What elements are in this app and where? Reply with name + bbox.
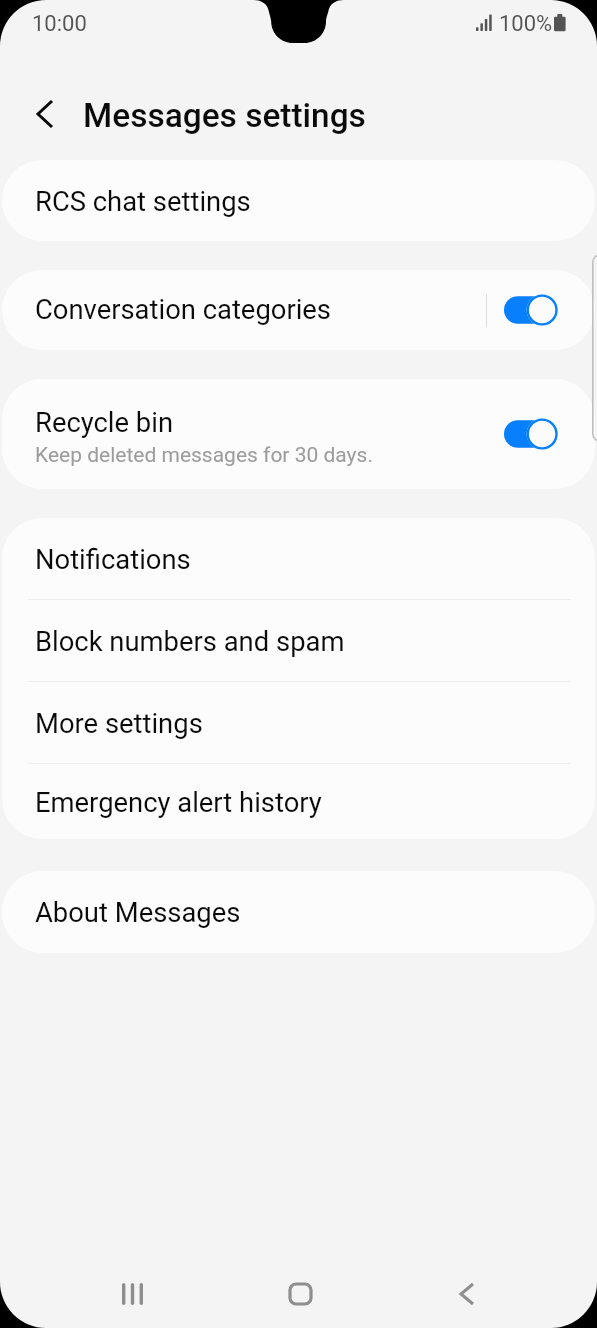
button[interactable]: Conversation categories bbox=[2, 270, 595, 350]
staticText: Block numbers and spam bbox=[35, 626, 345, 658]
button[interactable]: Toggle on bbox=[504, 294, 558, 326]
button[interactable]: Recycle bin bbox=[2, 379, 595, 489]
staticText: Emergency alert history bbox=[35, 787, 322, 819]
staticText: 100% bbox=[499, 11, 553, 37]
button[interactable]: Back bbox=[435, 1262, 499, 1326]
staticText: Conversation categories bbox=[35, 294, 332, 326]
button[interactable]: About Messages bbox=[2, 871, 595, 953]
staticText: Messages settings bbox=[83, 96, 366, 135]
staticText: About Messages bbox=[35, 897, 241, 929]
button[interactable]: Notifications bbox=[2, 518, 595, 599]
staticText: Notifications bbox=[35, 544, 191, 576]
button[interactable]: Block numbers and spam bbox=[2, 600, 595, 681]
button[interactable]: Toggle on bbox=[504, 418, 558, 450]
button[interactable]: RCS chat settings bbox=[2, 160, 595, 241]
staticText: Keep deleted messages for 30 days. bbox=[35, 443, 373, 468]
button[interactable]: Navigate up bbox=[22, 91, 68, 137]
staticText: Recycle bin bbox=[35, 407, 174, 439]
staticText: More settings bbox=[35, 708, 203, 740]
button[interactable]: Recent apps bbox=[100, 1262, 164, 1326]
button[interactable]: More settings bbox=[2, 682, 595, 763]
staticText: RCS chat settings bbox=[35, 186, 251, 218]
button[interactable]: Emergency alert history bbox=[2, 764, 595, 839]
button[interactable]: Home bbox=[268, 1262, 332, 1326]
staticText: 10:00 bbox=[32, 11, 87, 37]
